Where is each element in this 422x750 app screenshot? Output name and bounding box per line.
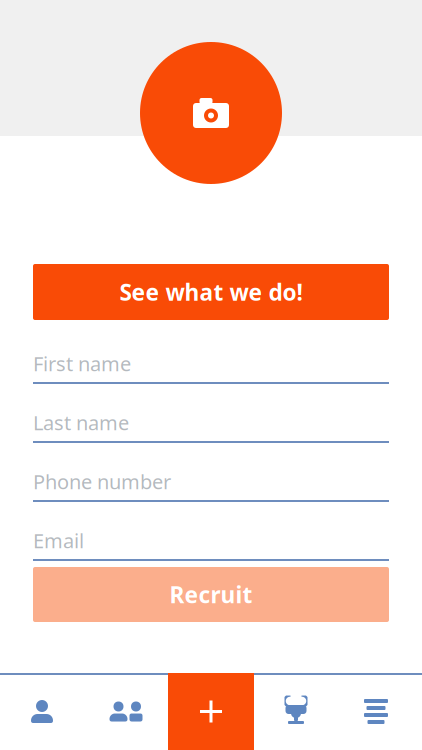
button[interactable]: Recruit bbox=[33, 567, 389, 622]
staticText: First name bbox=[33, 350, 131, 377]
button[interactable]: Add bbox=[168, 673, 254, 750]
staticText: Email bbox=[33, 527, 84, 554]
staticText: Phone number bbox=[33, 468, 171, 495]
staticText: See what we do! bbox=[119, 277, 302, 307]
button[interactable]: Leaderboard bbox=[254, 673, 338, 750]
button[interactable]: Team bbox=[84, 673, 168, 750]
button[interactable]: Menu bbox=[338, 673, 422, 750]
staticText: Recruit bbox=[169, 579, 252, 609]
button[interactable]: Profile bbox=[0, 673, 84, 750]
button[interactable]: See what we do! bbox=[33, 264, 389, 320]
staticText: Last name bbox=[33, 409, 129, 436]
